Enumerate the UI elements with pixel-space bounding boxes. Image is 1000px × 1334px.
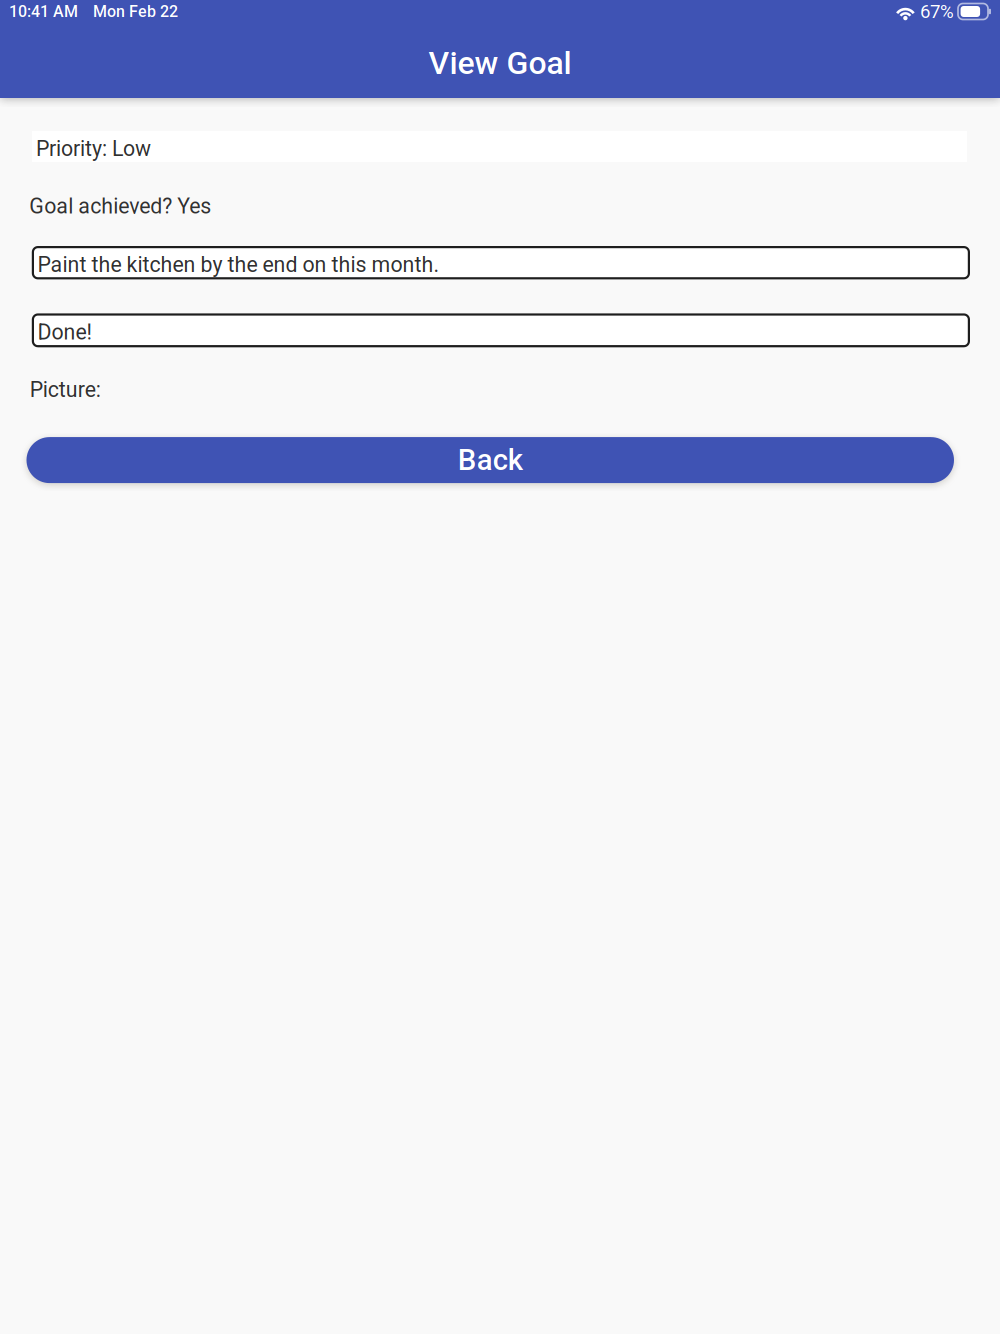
button[interactable]: Done! bbox=[33, 314, 969, 346]
staticText: Priority: Low bbox=[36, 136, 151, 161]
staticText: Picture: bbox=[30, 377, 101, 402]
staticText: Back bbox=[458, 443, 523, 477]
staticText: 67% bbox=[920, 1, 954, 22]
staticText: Done! bbox=[37, 320, 92, 345]
staticText: Paint the kitchen by the end on this mon… bbox=[37, 252, 439, 277]
staticText: 10:41 AM bbox=[9, 2, 78, 21]
button[interactable]: Back bbox=[26, 437, 954, 483]
button[interactable]: Paint the kitchen by the end on this mon… bbox=[33, 247, 969, 278]
staticText: View Goal bbox=[428, 44, 571, 82]
staticText: Mon Feb 22 bbox=[93, 2, 178, 21]
staticText: Goal achieved? Yes bbox=[29, 194, 211, 219]
button[interactable]: Priority: Low bbox=[32, 131, 967, 162]
